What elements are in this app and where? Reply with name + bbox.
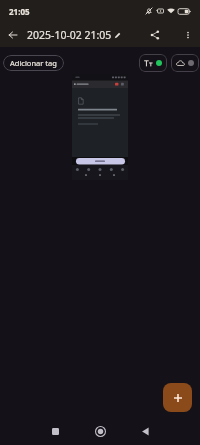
staticText: Adicionar tag <box>10 58 57 68</box>
button[interactable]: Recentes <box>42 418 68 444</box>
button[interactable]: Início <box>87 418 113 444</box>
staticText: 21:05 <box>9 6 30 17</box>
button[interactable]: Adicionar <box>163 383 192 412</box>
button[interactable]: Formatar texto <box>139 54 167 72</box>
button[interactable]: Voltar <box>0 22 25 47</box>
button[interactable]: Compartilhar <box>144 24 166 46</box>
button[interactable]: Sincronizar <box>171 54 199 72</box>
button[interactable]: Adicionar tag <box>3 55 64 71</box>
button[interactable]: Mais opções <box>178 25 198 45</box>
button[interactable]: Editar título <box>112 30 122 40</box>
staticText: 2025-10-02 21:05 <box>27 28 112 42</box>
button[interactable]: Voltar <box>132 418 158 444</box>
